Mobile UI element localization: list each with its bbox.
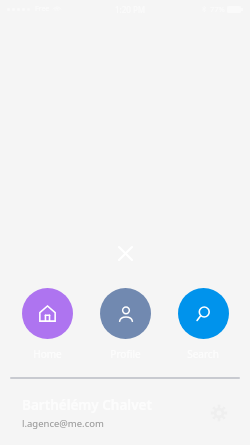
button[interactable]: Profile bbox=[94, 288, 156, 361]
button[interactable]: Home bbox=[16, 288, 78, 361]
staticText: l.agence@me.com bbox=[22, 417, 104, 430]
button[interactable]: Search bbox=[172, 288, 234, 361]
button[interactable]: Barthélémy Chalvet bbox=[0, 392, 250, 434]
